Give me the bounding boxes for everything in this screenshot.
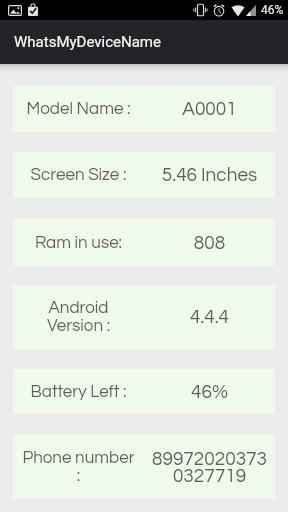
staticText: Android Version : xyxy=(21,299,136,335)
staticText: 4.4.4 xyxy=(152,307,267,327)
staticText: 46% xyxy=(152,382,267,402)
staticText: WhatsMyDeviceName xyxy=(14,33,161,51)
staticText: 899720203730327719 xyxy=(152,449,267,486)
staticText: Model Name : xyxy=(21,100,136,118)
staticText: Screen Size : xyxy=(21,166,136,184)
button[interactable]: Ram in use: xyxy=(13,219,275,266)
staticText: 808 xyxy=(152,233,267,253)
button[interactable]: Screen Size : xyxy=(13,152,275,198)
button[interactable]: Model Name : xyxy=(13,86,275,132)
staticText: 46% xyxy=(261,3,284,17)
staticText: A0001 xyxy=(152,99,267,119)
staticText: Ram in use: xyxy=(21,234,136,252)
staticText: 5.46 Inches xyxy=(152,165,267,185)
staticText: Phone number : xyxy=(21,449,136,485)
staticText: Battery Left : xyxy=(21,383,136,401)
button[interactable]: Android Version : xyxy=(13,285,275,349)
button[interactable]: Phone number : xyxy=(13,435,275,499)
button[interactable]: Battery Left : xyxy=(13,369,275,414)
